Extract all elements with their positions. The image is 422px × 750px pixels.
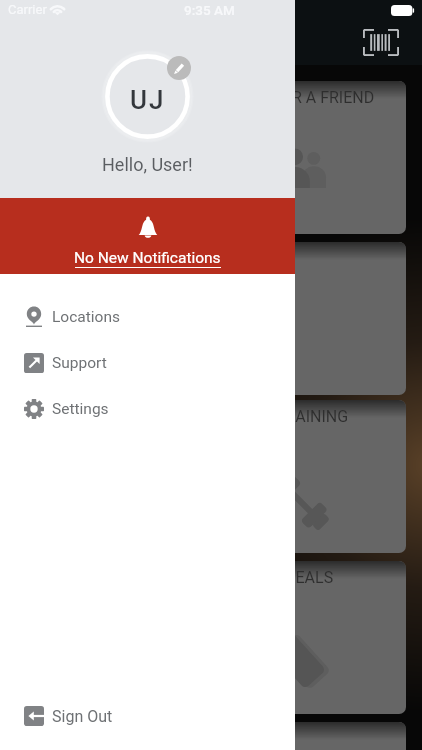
staticText: Hello, User! — [102, 154, 193, 175]
staticText: 9:35 AM — [184, 2, 235, 18]
staticText: Support — [52, 354, 107, 372]
button[interactable] — [30, 242, 406, 395]
button[interactable]: Scan membership barcode — [363, 29, 399, 56]
button[interactable]: Sign Out — [0, 694, 295, 738]
button[interactable]: DEALS — [30, 561, 406, 714]
button[interactable]: Settings — [0, 388, 295, 430]
staticText: REFER A FRIEND — [255, 88, 375, 107]
staticText: Settings — [52, 400, 109, 418]
staticText: No New Notifications — [74, 249, 221, 267]
button[interactable]: No New Notifications — [0, 198, 295, 274]
staticText: Sign Out — [52, 707, 113, 726]
button[interactable]: Support — [0, 342, 295, 384]
staticText: DEALS — [285, 568, 334, 587]
staticText: UJ — [130, 85, 166, 115]
staticText: Locations — [52, 308, 120, 326]
button[interactable]: Edit profile picture — [105, 54, 190, 139]
button[interactable] — [30, 722, 406, 750]
staticText: Carrier — [8, 2, 47, 17]
button[interactable]: Locations — [0, 296, 295, 338]
button[interactable]: REFER A FRIEND — [30, 81, 406, 234]
staticText: PERSONAL TRAINING — [192, 407, 349, 426]
button[interactable]: PERSONAL TRAINING — [30, 400, 406, 553]
